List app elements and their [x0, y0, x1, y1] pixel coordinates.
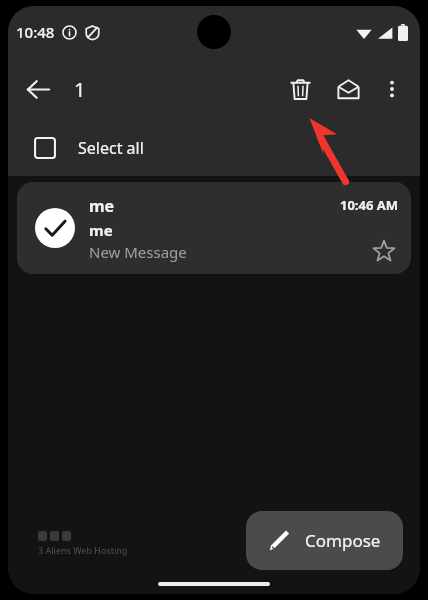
button[interactable]: Mark as read: [326, 67, 370, 111]
staticText: 1: [74, 76, 86, 103]
staticText: me: [89, 220, 113, 240]
button[interactable]: Delete: [278, 67, 322, 111]
button[interactable]: Back: [16, 67, 60, 111]
staticText: 3 Aliens Web Hosting: [38, 544, 128, 556]
staticText: me: [89, 195, 115, 217]
button[interactable]: Compose: [246, 511, 403, 570]
staticText: 10:48: [16, 22, 55, 42]
staticText: New Message: [89, 242, 187, 262]
button[interactable]: Star: [369, 236, 399, 266]
button[interactable]: Select all: [8, 120, 420, 176]
staticText: Compose: [305, 529, 381, 552]
staticText: 10:46 AM: [340, 196, 399, 214]
button[interactable]: More options: [370, 67, 414, 111]
button[interactable]: me: [17, 182, 411, 274]
staticText: Select all: [78, 137, 144, 159]
